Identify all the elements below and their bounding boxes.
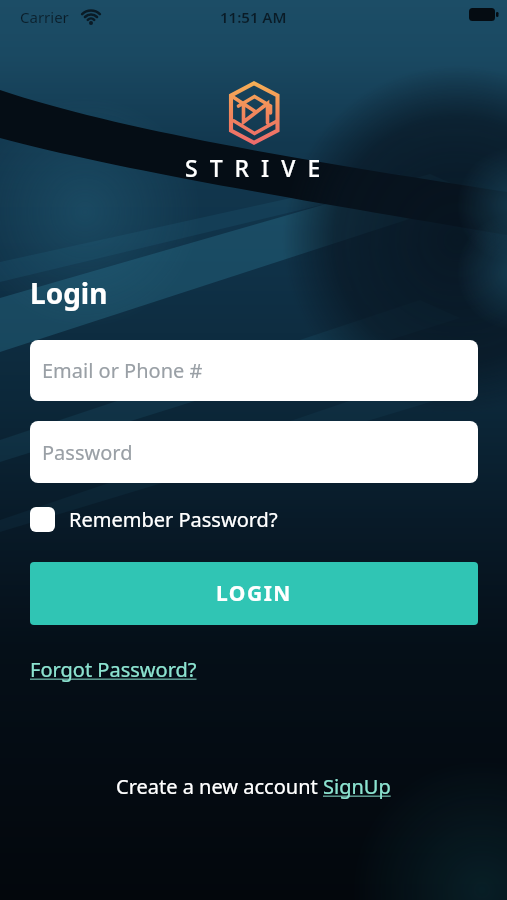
staticText: Email or Phone # [42, 357, 203, 384]
staticText: STRIVE [185, 152, 333, 183]
staticText: Remember Password? [69, 506, 278, 533]
staticText: Password [42, 439, 133, 466]
button[interactable]: LOGIN [30, 562, 478, 625]
staticText: Carrier [20, 7, 69, 27]
button[interactable]: Email or Phone # [30, 340, 478, 401]
button[interactable]: Create a new account [116, 773, 391, 800]
button[interactable]: Password [30, 421, 478, 483]
button[interactable]: Remember Password? [30, 506, 278, 533]
staticText: SignUp [323, 773, 391, 800]
button[interactable]: Forgot Password? [30, 656, 197, 683]
staticText: Login [30, 274, 108, 312]
staticText: Forgot Password? [30, 656, 197, 683]
staticText: 11:51 AM [220, 7, 287, 27]
staticText: Create a new account [116, 773, 323, 800]
staticText: LOGIN [216, 579, 292, 608]
